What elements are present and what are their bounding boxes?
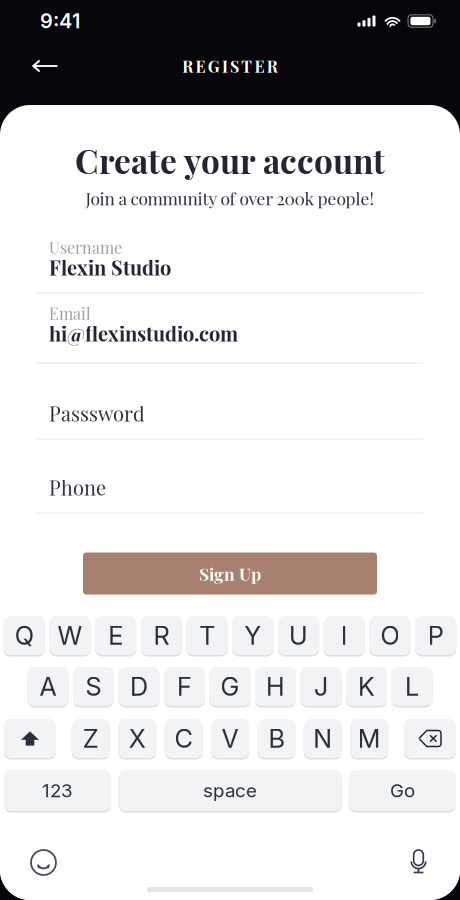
staticText: I: [222, 55, 228, 77]
button[interactable]: Sign Up: [83, 552, 377, 594]
button[interactable]: G: [209, 666, 250, 707]
button[interactable]: T: [187, 615, 228, 656]
button[interactable]: A: [27, 666, 68, 707]
staticText: Go: [390, 779, 415, 802]
staticText: Q: [15, 620, 34, 651]
button[interactable]: Shift: [4, 718, 56, 759]
staticText: R: [267, 55, 278, 77]
button[interactable]: Back: [23, 50, 67, 81]
button[interactable]: P: [415, 615, 456, 656]
staticText: Join a community of over 200k people!: [85, 186, 374, 209]
staticText: B: [268, 723, 284, 754]
button[interactable]: S: [73, 666, 114, 707]
button[interactable]: F: [164, 666, 205, 707]
button[interactable]: Dictation: [399, 841, 438, 884]
staticText: K: [358, 671, 375, 702]
staticText: V: [221, 723, 238, 754]
staticText: A: [39, 671, 56, 702]
staticText: O: [380, 620, 399, 651]
staticText: 123: [42, 779, 73, 802]
staticText: T: [241, 55, 252, 77]
button[interactable]: L: [391, 666, 432, 707]
button[interactable]: V: [211, 718, 249, 759]
staticText: F: [177, 671, 192, 702]
staticText: space: [203, 779, 257, 802]
staticText: Flexin Studio: [49, 254, 171, 281]
staticText: H: [266, 671, 285, 702]
staticText: E: [254, 55, 264, 77]
button[interactable]: Q: [4, 615, 45, 656]
button[interactable]: B: [257, 718, 295, 759]
staticText: Passsword: [49, 400, 145, 427]
button[interactable]: Z: [72, 718, 110, 759]
staticText: hi@flexinstudio.com: [49, 320, 238, 347]
staticText: J: [314, 671, 328, 702]
staticText: S: [85, 671, 101, 702]
staticText: 9:41: [40, 9, 80, 33]
button[interactable]: Emoji: [22, 841, 65, 884]
button[interactable]: J: [300, 666, 341, 707]
staticText: D: [130, 671, 148, 702]
staticText: Username: [49, 236, 122, 258]
staticText: Email: [49, 302, 91, 324]
staticText: E: [195, 55, 205, 77]
button[interactable]: M: [350, 718, 388, 759]
staticText: M: [358, 723, 381, 754]
staticText: R: [153, 620, 169, 651]
button[interactable]: O: [369, 615, 411, 656]
button[interactable]: R: [141, 615, 182, 656]
button[interactable]: space: [118, 769, 341, 812]
staticText: Phone: [49, 474, 106, 501]
staticText: Sign Up: [199, 562, 261, 585]
staticText: I: [341, 620, 348, 651]
button[interactable]: K: [346, 666, 387, 707]
button[interactable]: 123: [4, 769, 111, 812]
button[interactable]: Delete: [404, 718, 456, 759]
staticText: Z: [83, 723, 99, 754]
staticText: S: [230, 55, 239, 77]
staticText: G: [208, 55, 220, 77]
staticText: T: [199, 620, 215, 651]
staticText: Create your account: [75, 138, 385, 182]
staticText: N: [313, 723, 332, 754]
button[interactable]: E: [95, 615, 136, 656]
staticText: Y: [244, 620, 261, 651]
staticText: L: [405, 671, 419, 702]
button[interactable]: X: [118, 718, 156, 759]
button[interactable]: H: [255, 666, 296, 707]
button[interactable]: W: [49, 615, 91, 656]
button[interactable]: N: [304, 718, 342, 759]
button[interactable]: U: [278, 615, 319, 656]
staticText: P: [428, 620, 444, 651]
button[interactable]: C: [165, 718, 203, 759]
staticText: G: [220, 671, 239, 702]
button[interactable]: Go: [349, 769, 456, 812]
staticText: W: [58, 620, 83, 651]
button[interactable]: I: [324, 615, 365, 656]
staticText: R: [182, 55, 193, 77]
button[interactable]: Y: [232, 615, 273, 656]
staticText: E: [108, 620, 123, 651]
staticText: X: [129, 723, 146, 754]
button[interactable]: D: [118, 666, 159, 707]
staticText: C: [175, 723, 193, 754]
staticText: U: [289, 620, 308, 651]
